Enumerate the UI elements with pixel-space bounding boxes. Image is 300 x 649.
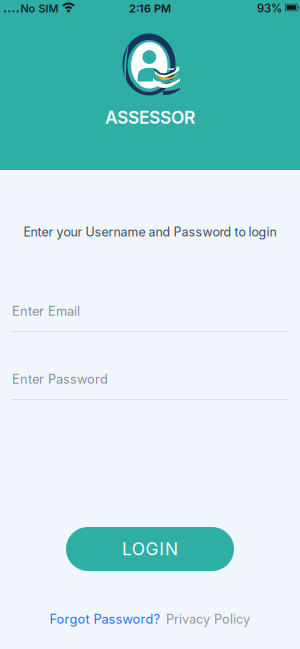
staticText: LOGIN [122,538,178,559]
staticText: Forgot Password? [49,611,160,627]
staticText: Enter Email [12,303,80,319]
staticText: ASSESSOR [105,107,195,128]
staticText: Enter Password [12,371,108,387]
button[interactable]: Enter Email [12,301,289,332]
staticText: 93% [257,2,282,15]
button[interactable]: Forgot Password? [49,611,160,627]
button[interactable]: Enter Password [12,369,289,400]
button[interactable]: LOGIN [66,527,234,571]
button[interactable]: Privacy Policy [166,611,250,627]
staticText: Privacy Policy [166,611,250,627]
staticText: 2:16 PM [129,2,171,15]
staticText: No SIM [20,2,58,15]
staticText: Enter your Username and Password to logi… [23,224,276,239]
